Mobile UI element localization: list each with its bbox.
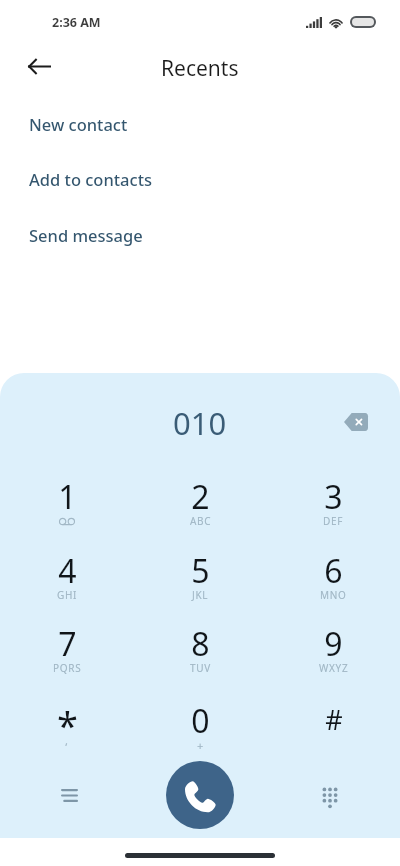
button[interactable]: Dialpad (308, 774, 350, 816)
staticText: JKL (192, 588, 209, 602)
button[interactable]: 6 (267, 542, 400, 616)
button[interactable]: Backspace (336, 402, 376, 442)
staticText: 0 (191, 699, 210, 743)
staticText: 7 (58, 622, 77, 666)
button[interactable]: 9 (267, 615, 400, 689)
staticText: , (65, 733, 69, 748)
staticText: 4 (58, 549, 77, 593)
button[interactable]: 4 (0, 542, 134, 616)
staticText: Add to contacts (29, 168, 152, 190)
staticText: 2:36 AM (52, 14, 101, 31)
staticText: TUV (190, 661, 211, 675)
staticText: 8 (191, 622, 210, 666)
staticText: DEF (323, 514, 344, 528)
staticText: 3 (324, 475, 343, 519)
button[interactable]: # (267, 689, 400, 746)
staticText: 1 (58, 475, 77, 519)
staticText: 010 (173, 402, 227, 444)
staticText: Recents (161, 54, 239, 83)
staticText: + (197, 738, 204, 753)
button[interactable]: Call log (48, 774, 90, 816)
button[interactable]: 0 (134, 689, 267, 746)
button[interactable]: 3 (267, 468, 400, 542)
button[interactable]: Call (166, 761, 234, 829)
staticText: * (57, 699, 78, 751)
staticText: GHI (57, 588, 78, 602)
button[interactable]: 8 (134, 615, 267, 689)
button[interactable]: * (0, 689, 134, 746)
staticText: MNO (320, 588, 347, 602)
button[interactable]: Add to contacts (0, 151, 400, 206)
button[interactable]: 2 (134, 468, 267, 542)
staticText: 6 (324, 549, 343, 593)
button[interactable]: 7 (0, 615, 134, 689)
staticText: 5 (191, 549, 210, 593)
button[interactable]: Back (18, 46, 60, 87)
staticText: 9 (324, 622, 343, 666)
staticText: ABC (190, 514, 212, 528)
staticText: WXYZ (319, 661, 349, 675)
staticText: New contact (29, 113, 128, 135)
staticText: 2 (191, 475, 210, 519)
button[interactable]: 1 (0, 468, 134, 542)
staticText: PQRS (53, 661, 82, 675)
button[interactable]: 5 (134, 542, 267, 616)
button[interactable]: Send message (0, 207, 400, 262)
staticText: # (325, 701, 343, 738)
staticText: Send message (29, 224, 143, 246)
button[interactable]: New contact (0, 96, 400, 151)
